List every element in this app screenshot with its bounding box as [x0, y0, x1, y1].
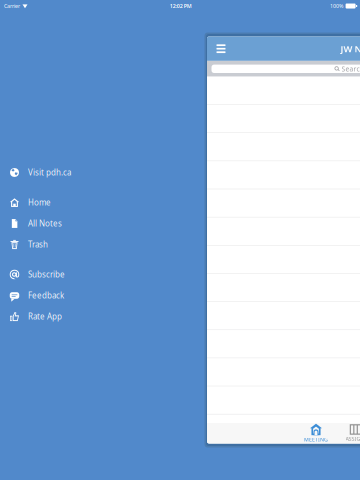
staticText: Subscribe [28, 269, 65, 280]
button[interactable]: Visit pdh.ca [3, 162, 123, 183]
staticText: Search [341, 64, 360, 73]
button[interactable]: ASSIGN [335, 423, 360, 443]
staticText: ASSIGN [345, 435, 360, 442]
staticText: All Notes [28, 218, 62, 229]
button[interactable]: Trash [3, 234, 123, 255]
button[interactable]: MEETING [296, 423, 335, 443]
button[interactable]: All Notes [3, 213, 123, 234]
staticText: Visit pdh.ca [28, 167, 71, 178]
button[interactable]: Feedback [3, 285, 123, 306]
staticText: JW Notes [340, 42, 360, 55]
staticText: MEETING [304, 436, 328, 443]
button[interactable]: Home [3, 192, 123, 213]
staticText: 12:02 PM [170, 2, 192, 10]
staticText: Home [28, 197, 51, 208]
staticText: Trash [28, 239, 48, 250]
staticText: 100% [330, 2, 343, 10]
button[interactable]: Rate App [3, 306, 123, 327]
staticText: Feedback [28, 290, 64, 301]
staticText: Carrier [4, 2, 20, 10]
button[interactable]: Subscribe [3, 264, 123, 285]
staticText: Rate App [28, 311, 62, 322]
button[interactable]: Menu [207, 36, 235, 61]
